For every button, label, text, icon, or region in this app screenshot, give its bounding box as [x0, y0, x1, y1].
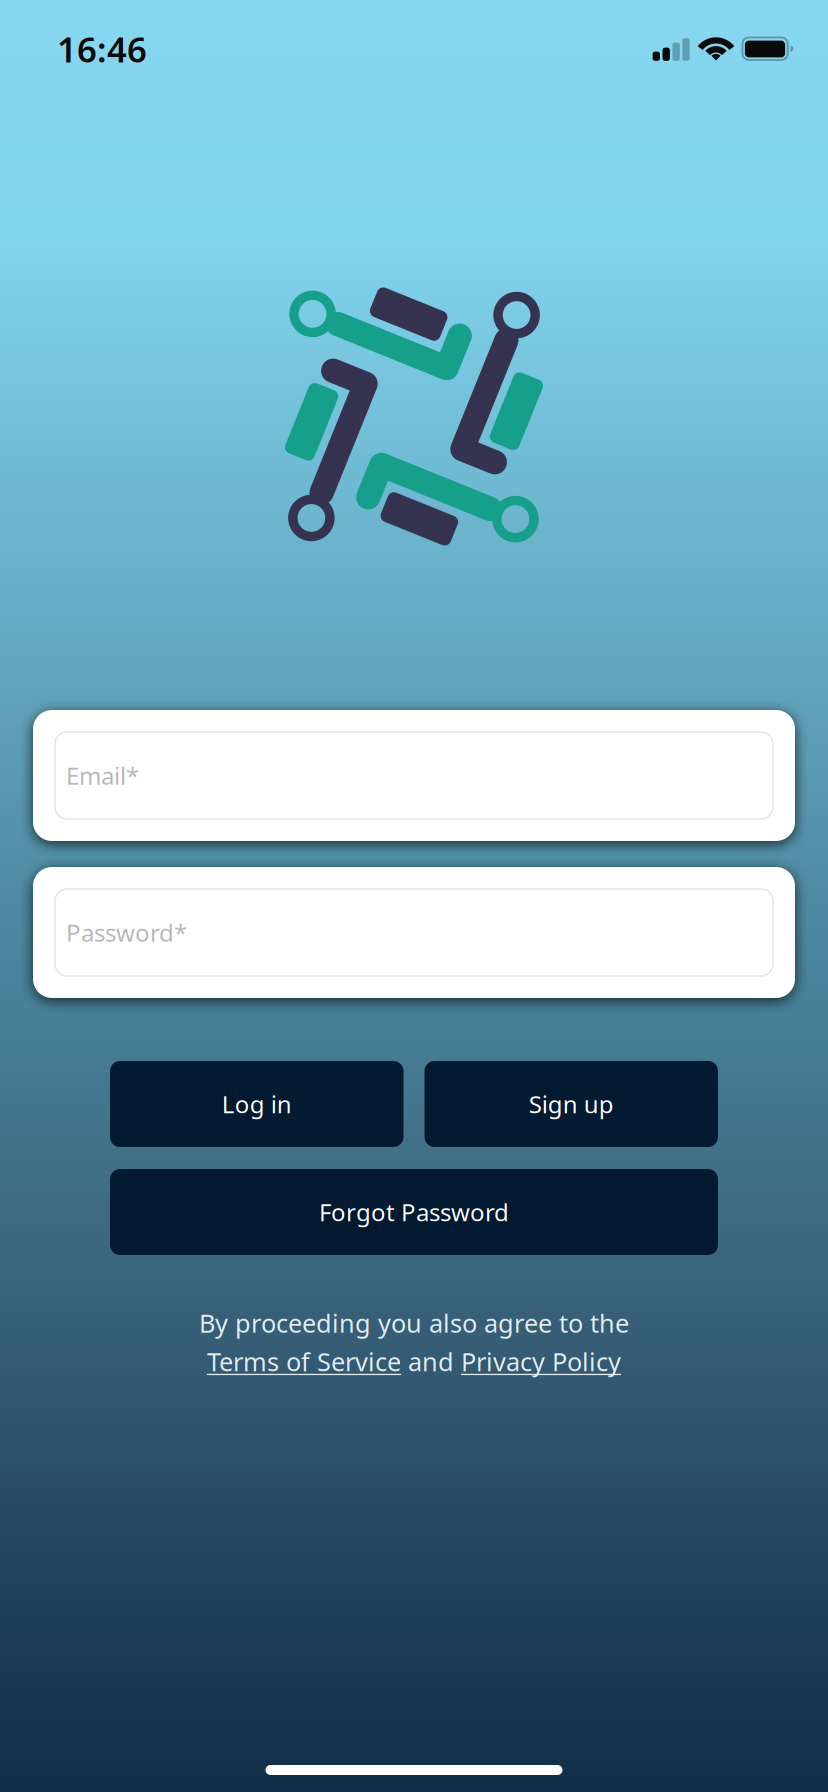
button[interactable]: Forgot Password — [110, 1169, 718, 1255]
staticText: Log in — [222, 1088, 292, 1120]
staticText: By proceeding you also agree to the — [199, 1306, 629, 1340]
staticText: Terms of Service and Privacy Policy — [207, 1345, 621, 1378]
button[interactable]: Password* — [33, 867, 795, 998]
button[interactable]: Email* — [33, 710, 795, 841]
staticText: Forgot Password — [319, 1196, 509, 1228]
staticText: 16:46 — [57, 26, 147, 72]
staticText: Password* — [66, 917, 187, 948]
staticText: Sign up — [529, 1088, 614, 1120]
button[interactable]: Sign up — [424, 1061, 718, 1147]
staticText: Email* — [66, 760, 139, 791]
button[interactable]: Log in — [110, 1061, 403, 1147]
